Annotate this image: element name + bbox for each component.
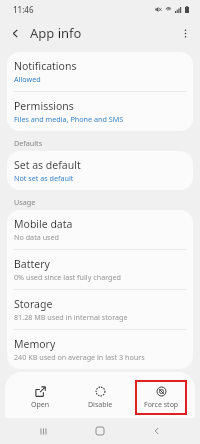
staticText: 11:46 [13, 4, 34, 15]
other: Disable [95, 386, 106, 397]
staticText: Disable [88, 400, 113, 410]
staticText: No data used [14, 232, 59, 242]
other: Force stop [156, 386, 167, 397]
button[interactable]: Battery [7, 250, 193, 289]
button[interactable]: More options [175, 23, 195, 43]
button[interactable]: Disable [74, 380, 126, 415]
staticText: Open [31, 400, 50, 410]
button[interactable]: Home [86, 418, 114, 444]
staticText: Usage [14, 197, 36, 207]
staticText: Notifications [14, 59, 77, 73]
staticText: 81.28 MB used in internal storage [14, 312, 128, 322]
staticText: Storage [14, 297, 53, 311]
button[interactable]: Memory [7, 330, 193, 369]
staticText: Not set as default [14, 173, 74, 183]
staticText: 240 KB used on average in last 3 hours [14, 352, 145, 362]
staticText: Permissions [14, 99, 74, 113]
button[interactable]: Recents [29, 418, 57, 444]
staticText: Mobile data [14, 217, 73, 231]
staticText: App info [30, 24, 82, 42]
button[interactable]: Permissions [7, 92, 193, 131]
button[interactable]: Mobile data [7, 210, 193, 249]
button[interactable]: Open [14, 380, 66, 415]
button[interactable]: Set as default [7, 151, 193, 190]
staticText: Files and media, Phone and SMS [14, 114, 124, 124]
staticText: Battery [14, 257, 50, 271]
button[interactable]: Back [5, 23, 25, 43]
button[interactable]: Back [143, 418, 171, 444]
staticText: Defaults [14, 138, 43, 148]
staticText: Memory [14, 337, 56, 351]
button[interactable]: Notifications [7, 52, 193, 91]
button[interactable]: Force stop [137, 382, 185, 413]
staticText: 0% used since last fully charged [14, 272, 121, 282]
other: Open [35, 386, 46, 397]
button[interactable]: Storage [7, 290, 193, 329]
staticText: Set as default [14, 158, 81, 172]
staticText: Force stop [144, 400, 179, 410]
staticText: Allowed [14, 74, 41, 84]
